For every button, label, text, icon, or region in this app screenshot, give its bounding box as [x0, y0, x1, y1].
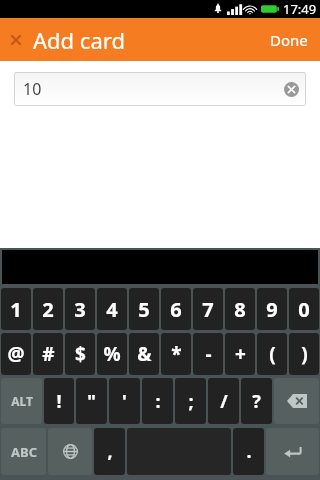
staticText: # [42, 341, 55, 367]
button[interactable]: 9 [257, 288, 287, 330]
staticText: $ [75, 341, 86, 367]
staticText: - [205, 341, 212, 367]
staticText: : [155, 389, 161, 414]
button[interactable]: Done [258, 18, 320, 61]
other: Close [9, 33, 23, 47]
button[interactable]: Clear text [284, 82, 299, 97]
button[interactable]: 8 [225, 288, 255, 330]
button[interactable]: - [193, 333, 223, 375]
staticText: 1 [10, 296, 22, 323]
button[interactable]: + [225, 333, 255, 375]
button[interactable]: ! [44, 378, 74, 424]
staticText: % [103, 341, 121, 367]
button[interactable]: ' [109, 378, 140, 424]
button[interactable]: % [97, 333, 127, 375]
button[interactable]: 2 [33, 288, 63, 330]
button[interactable]: " [76, 378, 107, 424]
staticText: 17:49 [283, 0, 317, 18]
button[interactable]: Enter [266, 428, 319, 475]
staticText: 3 [74, 296, 86, 323]
button[interactable]: . [233, 428, 264, 475]
staticText: 5 [138, 296, 150, 323]
button[interactable]: & [129, 333, 159, 375]
staticText: 0 [298, 296, 310, 323]
button[interactable]: ALT [1, 378, 42, 424]
staticText: + [235, 341, 246, 367]
button[interactable]: ( [257, 333, 287, 375]
button[interactable]: 1 [1, 288, 31, 330]
button[interactable]: Change language [48, 428, 92, 475]
staticText: ; [188, 389, 194, 414]
staticText: 8 [234, 296, 246, 323]
button[interactable]: 7 [193, 288, 223, 330]
button[interactable]: 0 [289, 288, 319, 330]
button[interactable]: ; [175, 378, 206, 424]
button[interactable]: 10 [14, 72, 306, 106]
staticText: / [220, 389, 228, 414]
staticText: 6 [170, 296, 182, 323]
staticText: ' [122, 389, 127, 414]
staticText: Done [270, 30, 308, 50]
staticText: Add card [33, 25, 125, 55]
button[interactable]: , [94, 428, 125, 475]
staticText: ) [301, 341, 308, 367]
staticText: ABC [11, 443, 37, 461]
staticText: 7 [202, 296, 214, 323]
button[interactable]: / [208, 378, 239, 424]
button[interactable]: $ [65, 333, 95, 375]
button[interactable]: Close [0, 25, 131, 55]
staticText: , [107, 439, 113, 464]
staticText: ! [56, 389, 62, 414]
staticText: 9 [266, 296, 278, 323]
staticText: ALT [11, 393, 33, 409]
button[interactable]: : [142, 378, 173, 424]
button[interactable]: 6 [161, 288, 191, 330]
button[interactable]: ? [241, 378, 272, 424]
staticText: 2 [42, 296, 54, 323]
button[interactable]: Backspace [274, 378, 319, 424]
button[interactable]: @ [1, 333, 31, 375]
button[interactable]: ) [289, 333, 319, 375]
button[interactable]: 5 [129, 288, 159, 330]
button[interactable]: ABC [1, 428, 46, 475]
staticText: ( [269, 341, 276, 367]
staticText: 10 [23, 78, 42, 100]
staticText: ? [252, 389, 261, 414]
button[interactable]: # [33, 333, 63, 375]
staticText: 4 [106, 296, 118, 323]
button[interactable]: 3 [65, 288, 95, 330]
staticText: " [87, 389, 96, 414]
staticText: & [137, 341, 152, 367]
staticText: . [246, 439, 252, 464]
staticText: @ [7, 341, 25, 367]
button[interactable]: 4 [97, 288, 127, 330]
button[interactable]: * [161, 333, 191, 375]
staticText: * [171, 341, 182, 367]
